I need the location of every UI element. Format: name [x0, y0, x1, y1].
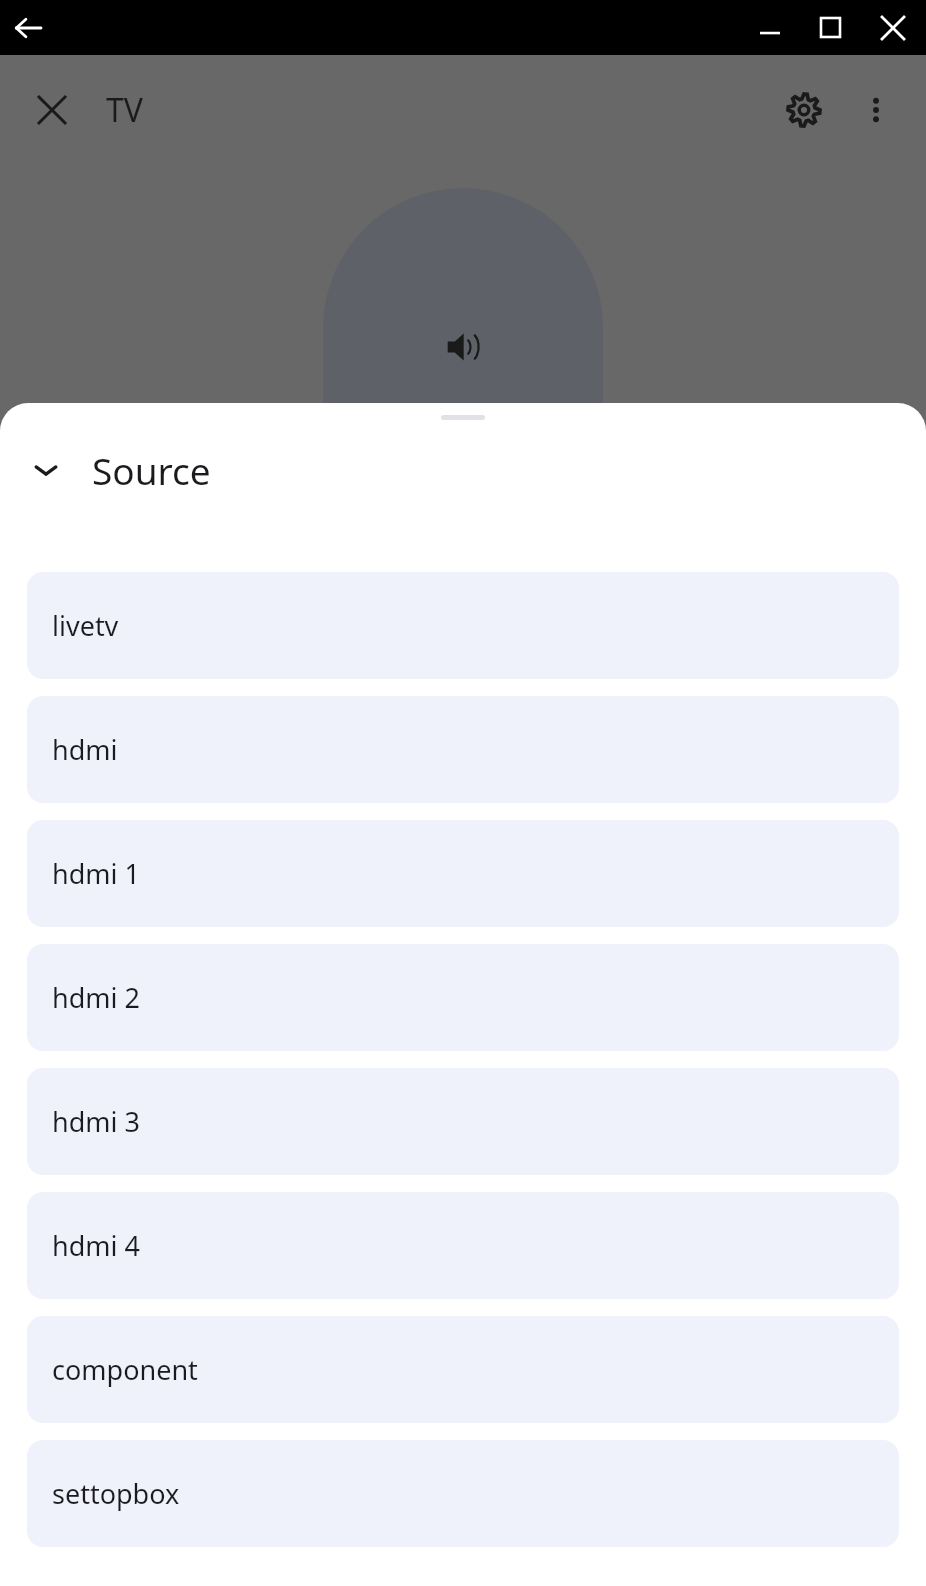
- button[interactable]: livetv: [27, 572, 899, 679]
- button[interactable]: Back: [0, 0, 55, 55]
- button[interactable]: Close: [24, 82, 80, 138]
- button[interactable]: Maximize: [800, 0, 860, 55]
- button[interactable]: component: [27, 1316, 899, 1423]
- button[interactable]: settopbox: [27, 1440, 899, 1547]
- button[interactable]: hdmi 4: [27, 1192, 899, 1299]
- staticText: component: [52, 1351, 198, 1388]
- staticText: hdmi 2: [52, 979, 140, 1016]
- staticText: hdmi: [52, 731, 118, 768]
- staticText: Source: [92, 445, 211, 495]
- button[interactable]: hdmi 2: [27, 944, 899, 1051]
- button[interactable]: Volume: [441, 325, 485, 369]
- button[interactable]: Settings: [776, 82, 832, 138]
- button[interactable]: Close window: [860, 0, 926, 55]
- button[interactable]: hdmi 3: [27, 1068, 899, 1175]
- staticText: hdmi 1: [52, 855, 140, 892]
- staticText: TV: [106, 88, 143, 132]
- staticText: livetv: [52, 607, 119, 644]
- button[interactable]: More options: [850, 84, 902, 136]
- button[interactable]: Source: [0, 420, 926, 520]
- button[interactable]: hdmi 1: [27, 820, 899, 927]
- button[interactable]: Minimize: [740, 0, 800, 55]
- staticText: hdmi 3: [52, 1103, 140, 1140]
- button[interactable]: hdmi: [27, 696, 899, 803]
- staticText: hdmi 4: [52, 1227, 140, 1264]
- staticText: settopbox: [52, 1475, 180, 1512]
